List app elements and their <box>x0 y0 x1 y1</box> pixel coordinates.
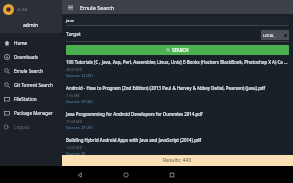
button[interactable]: Java Programming for Android Developers … <box>66 111 289 130</box>
staticText: java <box>66 18 74 24</box>
staticText: Building Hybrid Android Apps with Java a… <box>66 137 202 143</box>
staticText: Results: 443 <box>163 157 192 164</box>
button[interactable]: FileStation <box>0 92 62 106</box>
button[interactable]: admin <box>0 18 62 33</box>
button[interactable]: Building Hybrid Android Apps with Java a… <box>66 137 289 155</box>
button[interactable]: Home <box>118 167 134 183</box>
staticText: Git Torrent Search <box>14 82 53 88</box>
staticText: Sources: 29 (34) <box>66 99 93 104</box>
staticText: SEARCH <box>172 47 189 53</box>
staticText: v1.0.0 <box>17 7 27 12</box>
button[interactable]: Home <box>0 36 62 50</box>
button[interactable]: Logout <box>0 120 62 134</box>
button[interactable]: 100 Tutorials (C , Java, Asp, Perl, Asse… <box>66 59 289 78</box>
staticText: 13.50 MB <box>66 145 82 150</box>
button[interactable]: Back <box>72 167 88 183</box>
staticText: Sources: 28 <box>66 151 86 155</box>
staticText: Logout <box>14 124 30 130</box>
staticText: Emule Search <box>14 68 44 74</box>
staticText: 15.68 MB <box>66 119 82 124</box>
staticText: Emule Search <box>80 4 115 11</box>
staticText: Android - How to Program (2nd Edition) (… <box>66 85 266 91</box>
staticText: LOCAL <box>263 33 275 38</box>
staticText: Downloads <box>14 54 39 60</box>
staticText: Target <box>66 31 81 38</box>
staticText: Sources: 29 (29) <box>66 125 93 130</box>
button[interactable]: java <box>66 17 289 25</box>
staticText: FileStation <box>14 96 37 102</box>
staticText: Java Programming for Android Developers … <box>66 111 203 117</box>
button[interactable]: Open navigation menu <box>66 3 74 11</box>
staticText: 48.89 MB <box>66 67 82 72</box>
staticText: Sources: 22 (23) <box>66 73 93 78</box>
button[interactable]: Target <box>66 28 261 41</box>
button[interactable]: Downloads <box>0 50 62 64</box>
button[interactable]: LOCAL <box>261 30 289 40</box>
staticText: Home <box>14 40 28 46</box>
button[interactable]: Android - How to Program (2nd Edition) (… <box>66 85 289 104</box>
button[interactable]: Package Manager <box>0 106 62 120</box>
button[interactable]: SEARCH <box>66 45 289 55</box>
button[interactable]: Emule Search <box>0 64 62 78</box>
button[interactable]: Results: 443 <box>62 155 293 166</box>
staticText: 7.66 MB <box>66 93 80 98</box>
staticText: admin <box>23 22 39 29</box>
staticText: Package Manager <box>14 110 53 116</box>
staticText: 100 Tutorials (C , Java, Asp, Perl, Asse… <box>66 59 289 65</box>
button[interactable]: Recent apps <box>164 167 180 183</box>
button[interactable]: Git Torrent Search <box>0 78 62 92</box>
